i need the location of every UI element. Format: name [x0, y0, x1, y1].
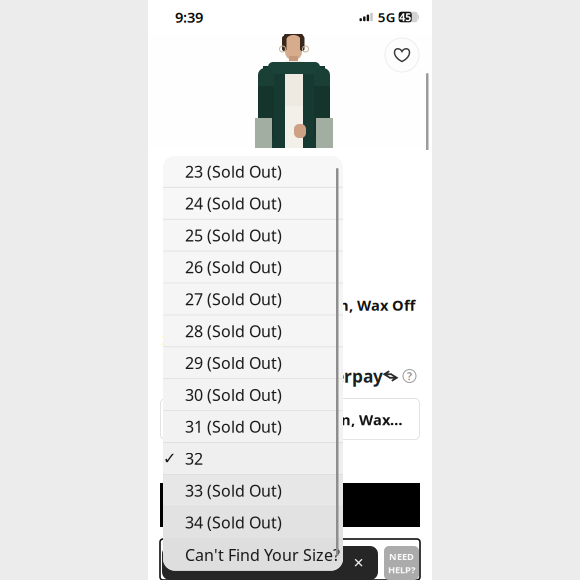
button[interactable]: ADD TO BAG	[160, 483, 420, 527]
button[interactable]	[163, 507, 343, 539]
button[interactable]	[163, 315, 343, 347]
staticText: LAMARQUE	[162, 168, 252, 189]
staticText: 25 (Sold Out)	[185, 225, 282, 246]
staticText: $448	[162, 326, 206, 353]
button[interactable]	[163, 220, 343, 252]
staticText: 27 (Sold Out)	[185, 288, 282, 310]
staticText: Wax On, Wax Off	[294, 410, 404, 429]
button[interactable]: About Afterpay	[403, 369, 416, 382]
button[interactable]	[163, 252, 343, 284]
staticText: 31 (Sold Out)	[185, 416, 282, 437]
button[interactable]	[163, 188, 343, 220]
staticText: 9:39	[175, 7, 203, 27]
button[interactable]: Dismiss promotion	[162, 546, 378, 580]
staticText: 24 (Sold Out)	[185, 193, 282, 214]
staticText: 5G	[378, 8, 396, 26]
staticText: 26 (Sold Out)	[185, 256, 282, 278]
button[interactable]	[163, 156, 343, 188]
button[interactable]	[163, 379, 343, 411]
button[interactable]	[163, 475, 343, 507]
button[interactable]	[163, 539, 343, 571]
staticText: afterpay	[309, 364, 383, 387]
button[interactable]: Add to wishlist	[385, 38, 419, 72]
staticText: 28 (Sold Out)	[185, 320, 282, 341]
staticText	[163, 544, 167, 565]
staticText: 32	[185, 448, 203, 469]
button[interactable]	[163, 284, 343, 315]
staticText: HELP?	[388, 563, 415, 576]
staticText: ✕	[353, 555, 364, 570]
staticText: ADD TO BAG	[240, 494, 339, 516]
staticText: 45	[399, 10, 411, 24]
staticText: Wax On, Wax Off	[292, 295, 415, 315]
button[interactable]: Wax On, Wax Off	[160, 398, 420, 440]
button[interactable]: NEED	[384, 546, 419, 580]
staticText: 33 (Sold Out)	[185, 480, 282, 501]
staticText: ?	[407, 369, 412, 383]
staticText: 23 (Sold Out)	[185, 161, 282, 182]
staticText: ✓	[163, 449, 176, 468]
button[interactable]: ✓	[163, 443, 343, 475]
staticText: Can't Find Your Size?	[185, 544, 340, 565]
button[interactable]	[163, 411, 343, 443]
button[interactable]	[163, 347, 343, 379]
staticText: 34 (Sold Out)	[185, 512, 282, 533]
staticText: 30 (Sold Out)	[185, 384, 282, 405]
staticText: 29 (Sold Out)	[185, 352, 282, 373]
staticText: NEED	[389, 550, 414, 562]
